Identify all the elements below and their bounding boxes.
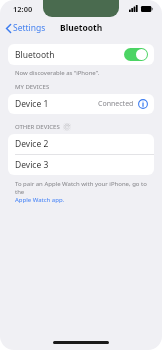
button[interactable]: Device 1	[8, 94, 154, 114]
staticText: 12:00	[13, 4, 33, 14]
staticText: Device 3	[15, 159, 49, 171]
button[interactable]: Device 2	[8, 134, 154, 154]
button[interactable]: Settings	[0, 19, 50, 37]
staticText: To pair an Apple Watch with your iPhone,…	[15, 180, 150, 196]
button[interactable]: Device 3	[8, 155, 154, 175]
button[interactable]: More info about Device 1	[138, 99, 148, 109]
button[interactable]: Bluetooth toggle, on	[124, 48, 148, 61]
staticText: Device 1	[15, 98, 49, 110]
staticText: Bluetooth	[15, 49, 55, 61]
button[interactable]: Apple Watch app.	[15, 196, 65, 204]
staticText: Connected	[98, 99, 134, 109]
staticText: Settings	[13, 22, 46, 34]
staticText: MY DEVICES	[15, 83, 50, 91]
staticText: Now discoverable as “iPhone”.	[15, 69, 100, 77]
button[interactable]: Bluetooth	[8, 44, 154, 65]
staticText: OTHER DEVICES	[15, 123, 60, 131]
staticText: Device 2	[15, 138, 49, 150]
staticText: Bluetooth	[60, 22, 103, 34]
